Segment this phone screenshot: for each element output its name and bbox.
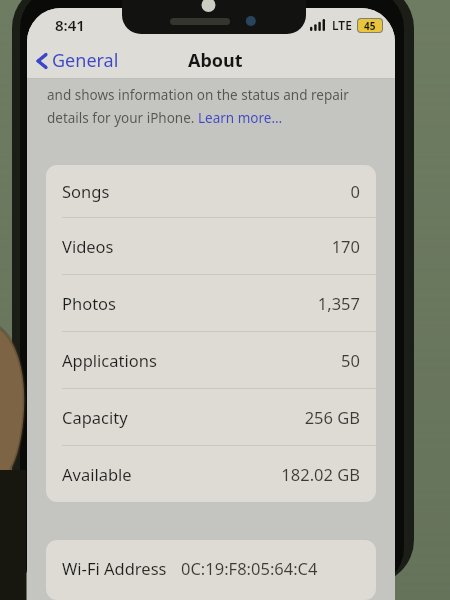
staticText: Learn more… <box>198 109 283 127</box>
staticText: 256 GB <box>136 406 360 428</box>
staticText: details for your iPhone. <box>47 109 198 127</box>
staticText: 8:41 <box>55 15 85 35</box>
button[interactable]: Photos <box>46 275 376 331</box>
staticText: 182.02 GB <box>140 463 360 485</box>
staticText: 0 <box>118 180 360 202</box>
staticText: 0C:19:F8:05:64:C4 <box>181 557 318 579</box>
button[interactable]: Capacity <box>46 389 376 445</box>
staticText: About <box>188 48 243 73</box>
staticText: Photos <box>62 292 117 314</box>
staticText: 50 <box>165 349 360 371</box>
button[interactable]: Learn more… <box>198 109 283 127</box>
staticText: 1,357 <box>125 292 360 314</box>
staticText: LTE <box>332 17 352 33</box>
staticText: Songs <box>62 180 110 202</box>
staticText: Applications <box>62 349 157 371</box>
other: Battery 45 percent, Low Power Mode <box>357 18 383 33</box>
staticText: 45 <box>364 19 376 32</box>
button[interactable]: Wi-Fi Address <box>46 540 376 596</box>
staticText: Capacity <box>62 406 128 428</box>
button[interactable]: General <box>27 44 127 77</box>
staticText: Videos <box>62 235 114 257</box>
staticText: General <box>52 48 119 73</box>
staticText: 170 <box>122 235 360 257</box>
staticText: Available <box>62 463 132 485</box>
button[interactable]: Available <box>46 446 376 502</box>
button[interactable]: Videos <box>46 218 376 274</box>
button[interactable]: Applications <box>46 332 376 388</box>
other: Cellular signal strength <box>310 19 328 31</box>
staticText: and shows information on the status and … <box>47 86 349 104</box>
staticText: Wi-Fi Address <box>62 557 167 579</box>
button[interactable]: Songs <box>46 165 376 217</box>
